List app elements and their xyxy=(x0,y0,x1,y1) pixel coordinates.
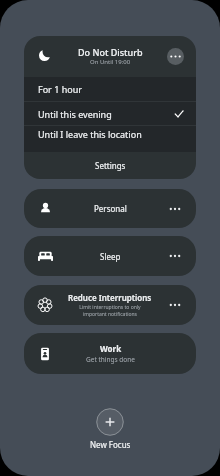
button[interactable]: More options xyxy=(168,202,182,216)
button[interactable]: Reduce Interruptions xyxy=(24,285,196,325)
button[interactable]: Personal xyxy=(24,189,196,228)
staticText: Limit interruptions to only important no… xyxy=(79,304,141,318)
staticText: Until this evening xyxy=(38,108,112,120)
staticText: Settings xyxy=(95,160,126,171)
staticText: Do Not Disturb xyxy=(78,46,143,58)
button[interactable]: More options xyxy=(168,298,182,312)
staticText: Reduce Interruptions xyxy=(68,292,152,303)
button[interactable]: More options xyxy=(168,249,182,263)
button[interactable]: Work xyxy=(24,333,196,374)
staticText: New Focus xyxy=(90,439,131,450)
staticText: Personal xyxy=(94,203,127,214)
button[interactable]: Until this evening xyxy=(24,102,196,125)
button[interactable]: Sleep xyxy=(24,236,196,276)
button[interactable]: Until I leave this location xyxy=(24,126,196,142)
staticText: On Until 19:00 xyxy=(90,58,131,66)
staticText: Sleep xyxy=(100,251,121,262)
button[interactable]: New Focus xyxy=(96,408,124,436)
staticText: Work xyxy=(100,343,122,354)
button[interactable]: Do Not Disturb xyxy=(24,36,196,77)
staticText: Get things done xyxy=(86,355,135,364)
button[interactable]: More options xyxy=(167,48,184,65)
button[interactable]: For 1 hour xyxy=(24,77,196,101)
staticText: Until I leave this location xyxy=(38,128,142,140)
staticText: For 1 hour xyxy=(38,83,82,95)
button[interactable]: Settings xyxy=(24,152,196,179)
